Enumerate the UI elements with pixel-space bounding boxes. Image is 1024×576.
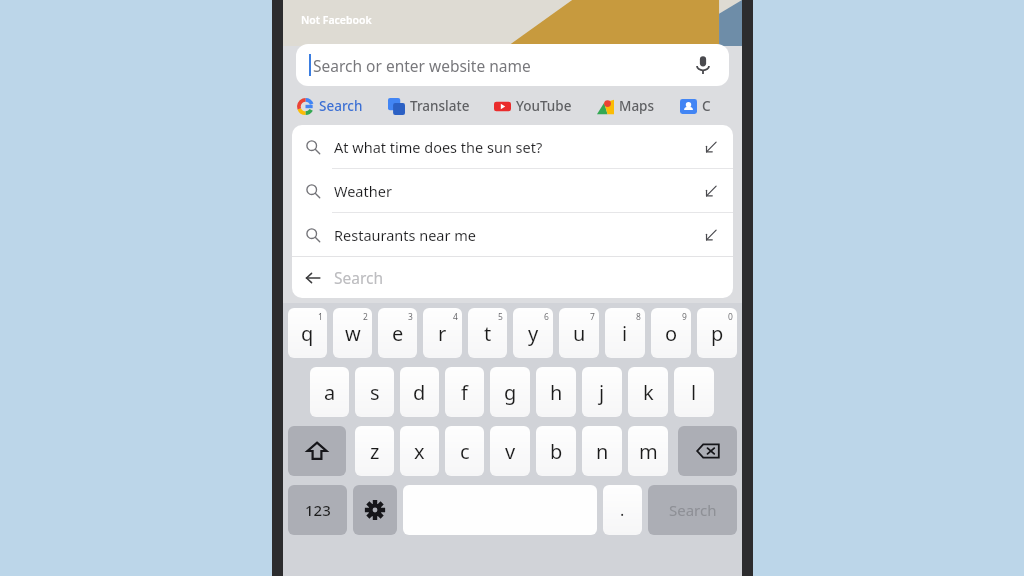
staticText: Restaurants near me (334, 225, 703, 245)
button[interactable]: h (536, 367, 576, 417)
button[interactable]: YouTube (494, 97, 572, 115)
staticText: h (550, 379, 563, 406)
button[interactable]: C (680, 97, 711, 115)
button[interactable]: u (559, 308, 599, 358)
staticText: j (599, 379, 605, 406)
staticText: t (484, 320, 492, 347)
staticText: k (643, 379, 654, 406)
staticText: b (550, 438, 563, 465)
button[interactable]: Back (292, 257, 733, 298)
staticText: i (622, 320, 628, 347)
staticText: C (702, 97, 711, 115)
button[interactable]: 123 (288, 485, 347, 535)
staticText: . (620, 499, 625, 521)
button[interactable]: j (582, 367, 622, 417)
staticText: YouTube (516, 97, 572, 115)
staticText: u (573, 320, 586, 347)
button[interactable]: . (603, 485, 642, 535)
button[interactable]: Translate (388, 97, 470, 115)
staticText: q (301, 320, 314, 347)
button[interactable]: o (651, 308, 691, 358)
button[interactable]: y (513, 308, 553, 358)
staticText: x (414, 438, 425, 465)
staticText: d (413, 379, 426, 406)
button[interactable]: Weather (292, 169, 733, 212)
staticText: 8 (636, 311, 641, 323)
button[interactable]: s (355, 367, 394, 417)
staticText: 9 (682, 311, 687, 323)
button[interactable]: l (674, 367, 714, 417)
staticText: 1 (318, 311, 323, 323)
button[interactable]: t (468, 308, 507, 358)
staticText: 3 (408, 311, 413, 323)
staticText: 0 (728, 311, 733, 323)
staticText: 5 (498, 311, 503, 323)
button[interactable]: d (400, 367, 439, 417)
staticText: c (460, 438, 470, 465)
button[interactable]: r (423, 308, 462, 358)
staticText: Weather (334, 181, 703, 201)
staticText: Search or enter website name (313, 55, 531, 76)
button[interactable]: Search or enter website name (296, 44, 729, 86)
staticText: At what time does the sun set? (334, 137, 703, 157)
button[interactable]: c (445, 426, 484, 476)
staticText: o (665, 320, 678, 347)
button[interactable]: Shift (288, 426, 346, 476)
button[interactable]: z (355, 426, 394, 476)
button[interactable]: Search (297, 97, 363, 115)
button[interactable]: f (445, 367, 484, 417)
button[interactable]: i (605, 308, 645, 358)
button[interactable]: b (536, 426, 576, 476)
staticText: 7 (590, 311, 595, 323)
staticText: Maps (619, 97, 655, 115)
button[interactable]: Backspace (678, 426, 737, 476)
button[interactable]: v (490, 426, 530, 476)
button[interactable]: k (628, 367, 668, 417)
button[interactable]: Keyboard settings (353, 485, 397, 535)
staticText: Search (669, 500, 717, 520)
staticText: a (324, 379, 336, 406)
staticText: w (345, 320, 361, 347)
staticText: l (691, 379, 697, 406)
staticText: n (596, 438, 609, 465)
staticText: z (370, 438, 380, 465)
button[interactable]: Voice search (691, 53, 715, 77)
staticText: Search (319, 97, 363, 115)
button[interactable]: m (628, 426, 668, 476)
staticText: g (504, 379, 517, 406)
button[interactable]: w (333, 308, 372, 358)
button[interactable]: g (490, 367, 530, 417)
other: Back (304, 269, 322, 287)
button[interactable]: Maps (597, 97, 655, 115)
button[interactable]: a (310, 367, 349, 417)
staticText: Translate (410, 97, 470, 115)
staticText: v (505, 438, 516, 465)
button[interactable]: Restaurants near me (292, 213, 733, 256)
staticText: 123 (305, 500, 331, 520)
staticText: m (639, 438, 658, 465)
staticText: r (438, 320, 447, 347)
staticText: 6 (544, 311, 549, 323)
button[interactable]: n (582, 426, 622, 476)
staticText: Search (334, 267, 384, 288)
staticText: y (528, 320, 539, 347)
staticText: e (392, 320, 404, 347)
button[interactable]: q (288, 308, 327, 358)
button[interactable]: e (378, 308, 417, 358)
button[interactable]: Search (648, 485, 737, 535)
staticText: s (370, 379, 380, 406)
button[interactable]: At what time does the sun set? (292, 125, 733, 168)
staticText: 4 (453, 311, 458, 323)
button[interactable]: x (400, 426, 439, 476)
button[interactable]: p (697, 308, 737, 358)
staticText: 2 (363, 311, 368, 323)
staticText: p (711, 320, 724, 347)
staticText: Not Facebook (301, 13, 372, 27)
staticText: f (461, 379, 468, 406)
